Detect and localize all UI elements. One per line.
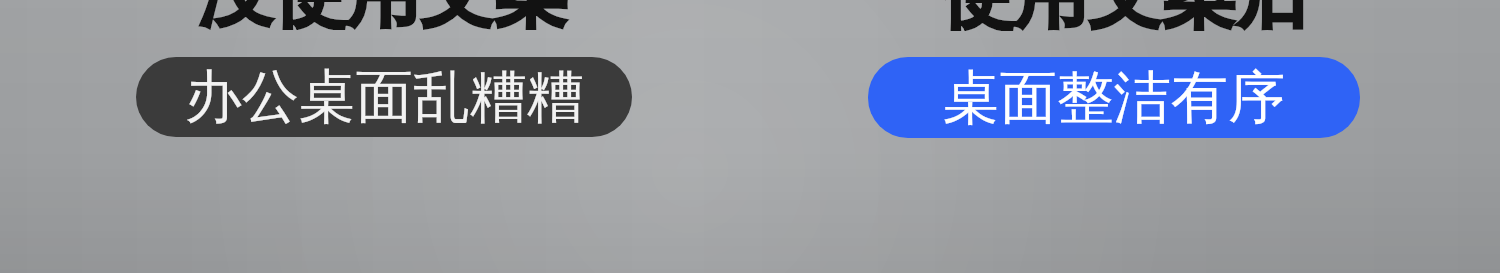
button[interactable]: 桌面整洁有序: [868, 57, 1360, 138]
button[interactable]: 办公桌面乱糟糟: [136, 57, 632, 137]
staticText: 桌面整洁有序: [943, 62, 1285, 134]
staticText: 办公桌面乱糟糟: [185, 61, 584, 133]
staticText: 使用文案后: [928, 0, 1322, 31]
staticText: 没使用文案: [188, 0, 578, 30]
